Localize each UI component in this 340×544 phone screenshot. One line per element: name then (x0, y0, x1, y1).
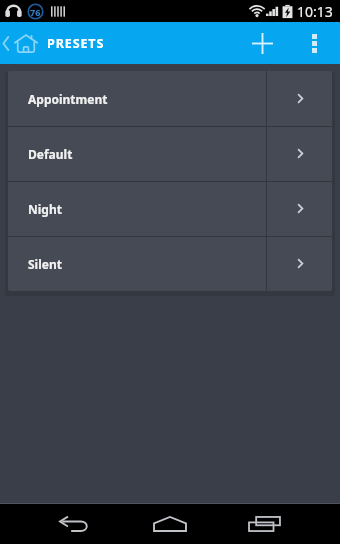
staticText: PRESETS (47, 35, 105, 52)
button[interactable]: Default (8, 126, 266, 181)
button[interactable]: Recents (233, 504, 297, 544)
staticText: Appointment (28, 91, 108, 107)
button[interactable]: Appointment (8, 71, 266, 126)
button[interactable]: Night (8, 181, 266, 236)
staticText: Night (28, 201, 62, 217)
button[interactable]: Open Silent (267, 236, 332, 291)
button[interactable]: Navigate up to home (0, 22, 42, 64)
button[interactable]: Open Appointment (267, 71, 332, 126)
staticText: Silent (28, 256, 62, 272)
button[interactable]: Back (43, 504, 107, 544)
button[interactable]: Open Default (267, 126, 332, 181)
button[interactable]: More options (288, 22, 340, 64)
button[interactable]: Silent (8, 236, 266, 291)
button[interactable]: Open Night (267, 181, 332, 236)
button[interactable]: Add preset (236, 22, 288, 64)
staticText: 76 (30, 6, 41, 18)
button[interactable]: Home (138, 504, 202, 544)
staticText: 10:13 (297, 2, 333, 21)
staticText: Default (28, 146, 73, 162)
